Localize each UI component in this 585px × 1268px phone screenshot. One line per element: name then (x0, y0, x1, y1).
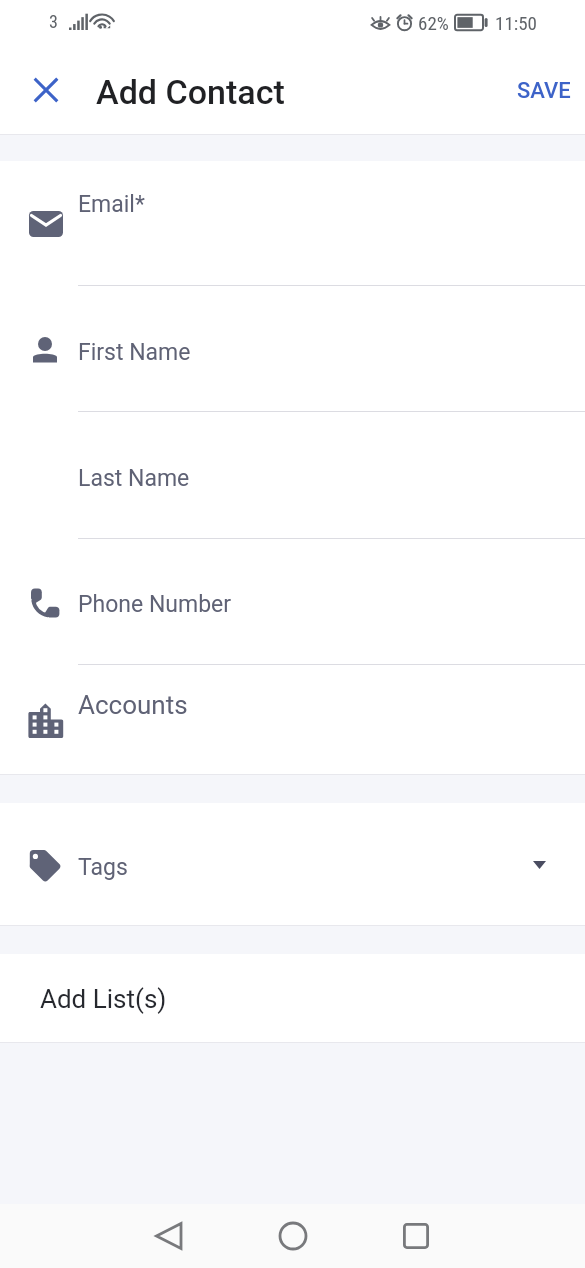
staticText: Add Contact (96, 72, 285, 112)
button[interactable]: Recents (391, 1204, 441, 1268)
button[interactable]: Email* (0, 161, 585, 286)
button[interactable]: Home (268, 1204, 318, 1268)
button[interactable]: Last Name (0, 412, 585, 539)
staticText: Phone Number (78, 591, 232, 618)
staticText: Email* (78, 191, 145, 218)
staticText: Tags (78, 854, 128, 881)
staticText: 3 (49, 11, 58, 32)
button[interactable]: Accounts (0, 665, 585, 774)
button[interactable]: First Name (0, 286, 585, 412)
staticText: Last Name (78, 465, 190, 492)
button[interactable]: Close (20, 64, 72, 116)
staticText: SAVE (517, 78, 571, 104)
button[interactable]: Tags (0, 803, 585, 925)
button[interactable]: Phone Number (0, 539, 585, 665)
button[interactable]: Back (143, 1204, 193, 1268)
staticText: 11:50 (495, 12, 537, 34)
button[interactable]: Add List(s) (0, 954, 585, 1042)
staticText: 62% (418, 12, 449, 34)
button[interactable]: SAVE (501, 68, 585, 122)
staticText: Add List(s) (40, 984, 167, 1014)
button[interactable]: Expand tags (522, 851, 556, 879)
staticText: Accounts (78, 690, 188, 720)
staticText: First Name (78, 339, 191, 366)
